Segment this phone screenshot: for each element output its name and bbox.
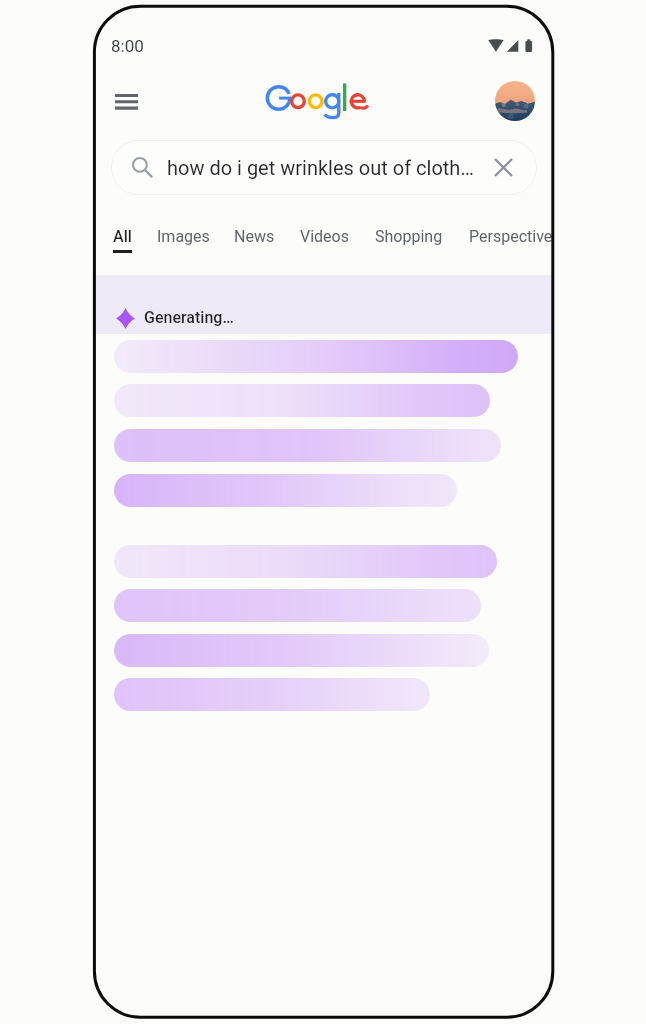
staticText: Videos bbox=[300, 227, 349, 246]
staticText: 8:00 bbox=[111, 36, 144, 56]
button[interactable]: Clear search bbox=[482, 146, 525, 189]
button[interactable]: Videos bbox=[300, 227, 349, 246]
button[interactable]: Shopping bbox=[375, 227, 443, 246]
button[interactable]: Images bbox=[157, 227, 210, 246]
button[interactable]: Perspectives bbox=[469, 227, 554, 246]
staticText: Perspectives bbox=[469, 227, 554, 246]
button[interactable]: All bbox=[113, 227, 132, 253]
staticText: Images bbox=[157, 227, 210, 246]
button[interactable]: Account bbox=[491, 77, 539, 125]
staticText: News bbox=[234, 227, 275, 246]
button[interactable]: how do i get wrinkles out of cloth… bbox=[111, 140, 537, 195]
button[interactable]: News bbox=[234, 227, 275, 246]
button[interactable]: Menu bbox=[103, 78, 149, 124]
staticText: Generating… bbox=[144, 308, 234, 327]
staticText: All bbox=[113, 227, 132, 246]
staticText: Shopping bbox=[375, 227, 443, 246]
staticText: how do i get wrinkles out of cloth… bbox=[167, 156, 474, 179]
